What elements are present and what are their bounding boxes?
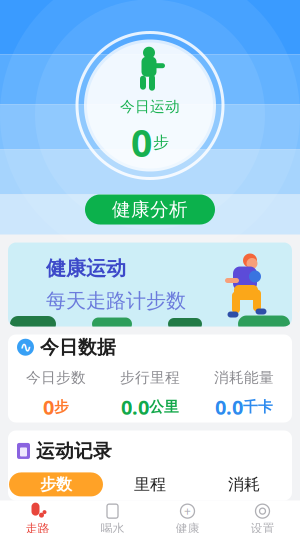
staticText: 今日步数 [26,369,86,387]
button[interactable]: + [150,500,225,533]
staticText: 0 [43,394,54,420]
button[interactable]: 健康分析 [85,194,215,224]
staticText: 0 [131,118,152,167]
staticText: 里程 [134,475,166,494]
staticText: 今日数据 [40,336,116,359]
button[interactable]: 步数 [9,472,103,496]
staticText: 设置 [250,521,274,533]
staticText: + [184,503,191,519]
staticText: 每天走路计步数 [46,288,186,313]
staticText: 运动记录 [36,439,112,462]
staticText: 步数 [40,475,72,494]
staticText: 健康运动 [46,256,126,280]
staticText: 公里 [149,398,179,416]
staticText: 千卡 [243,398,273,416]
button[interactable]: 消耗 [197,472,291,496]
staticText: 0.0 [215,394,243,420]
staticText: 步行里程 [120,369,180,387]
staticText: 健康分析 [112,198,188,221]
staticText: 0.0 [121,394,149,420]
staticText: 健康 [175,521,199,533]
button[interactable]: 喝水 [75,500,150,533]
staticText: 步 [153,133,169,152]
staticText: 喝水 [100,521,124,533]
staticText: 步 [54,398,69,416]
staticText: ∿ [19,339,31,355]
staticText: 走路 [25,521,49,533]
staticText: 消耗能量 [214,369,274,387]
staticText: 今日运动 [120,98,180,116]
button[interactable]: 设置 [225,500,300,533]
button[interactable]: 走路 [0,500,75,533]
button[interactable]: 里程 [103,472,197,496]
staticText: 消耗 [228,475,260,494]
